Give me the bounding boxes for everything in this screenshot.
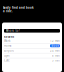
staticText: Airport (4, 49, 14, 52)
staticText: a ride. (3, 9, 13, 13)
button[interactable]: Work (4, 39, 60, 43)
button[interactable]: Where to? (4, 29, 60, 33)
staticText: 5 min (52, 59, 60, 62)
button[interactable]: Gym (4, 53, 60, 58)
staticText: Easily find and book (3, 6, 34, 9)
button[interactable]: Cafe (4, 58, 60, 63)
staticText: 24 min (50, 49, 60, 52)
staticText: Home (4, 44, 12, 47)
staticText: Work (4, 39, 10, 43)
staticText: Book (51, 44, 58, 47)
staticText: Cafe (4, 59, 10, 62)
staticText: Recent (4, 35, 14, 39)
staticText: Where to? (5, 29, 19, 32)
button[interactable]: Home (4, 43, 60, 48)
staticText: 12 min (50, 39, 60, 43)
button[interactable]: Airport (4, 48, 60, 53)
staticText: 8 min (52, 54, 60, 57)
staticText: Gym (4, 54, 9, 57)
